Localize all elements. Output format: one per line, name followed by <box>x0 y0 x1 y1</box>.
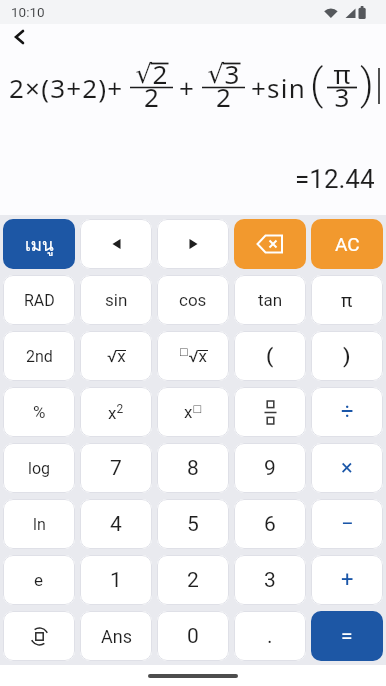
staticText: 2 <box>187 568 199 593</box>
button[interactable] <box>157 219 229 269</box>
button[interactable]: log <box>3 443 75 493</box>
button[interactable] <box>234 387 306 437</box>
button[interactable]: √x <box>80 331 152 381</box>
staticText: 10:10 <box>11 4 45 20</box>
staticText: √x <box>107 346 126 366</box>
staticText: π <box>341 289 353 311</box>
staticText: x□ <box>184 402 202 422</box>
staticText: 9 <box>264 456 276 481</box>
staticText: = <box>341 624 353 649</box>
button[interactable]: sin <box>80 275 152 325</box>
button[interactable]: 7 <box>80 443 152 493</box>
button[interactable]: 4 <box>80 499 152 549</box>
button[interactable]: 3 <box>234 555 306 605</box>
staticText: 0 <box>187 624 199 649</box>
button[interactable]: % <box>3 387 75 437</box>
staticText: AC <box>335 233 360 255</box>
button[interactable]: + <box>311 555 383 605</box>
staticText: 3 <box>264 568 276 593</box>
button[interactable]: 8 <box>157 443 229 493</box>
button[interactable]: 9 <box>234 443 306 493</box>
button[interactable]: = <box>311 611 383 661</box>
staticText: Ans <box>101 626 132 647</box>
button[interactable]: AC <box>311 219 383 269</box>
button[interactable]: ( <box>234 331 306 381</box>
staticText: 8 <box>187 456 199 481</box>
button[interactable]: □√x <box>157 331 229 381</box>
button[interactable]: x□ <box>157 387 229 437</box>
button[interactable]: cos <box>157 275 229 325</box>
staticText: □√x <box>179 346 208 366</box>
staticText: . <box>267 624 273 649</box>
staticText: × <box>341 455 353 481</box>
button[interactable]: ln <box>3 499 75 549</box>
button[interactable]: ÷ <box>311 387 383 437</box>
staticText: cos <box>179 290 207 310</box>
staticText: ln <box>33 515 46 534</box>
button[interactable]: 2nd <box>3 331 75 381</box>
button[interactable]: Ans <box>80 611 152 661</box>
staticText: % <box>33 402 46 422</box>
button[interactable]: . <box>234 611 306 661</box>
button[interactable] <box>234 219 306 269</box>
staticText: + <box>341 567 354 593</box>
button[interactable]: 0 <box>157 611 229 661</box>
button[interactable]: 5 <box>157 499 229 549</box>
button[interactable]: x2 <box>80 387 152 437</box>
button[interactable]: π <box>311 275 383 325</box>
staticText: ÷ <box>341 399 354 425</box>
button[interactable]: ) <box>311 331 383 381</box>
button[interactable]: 6 <box>234 499 306 549</box>
button[interactable]: RAD <box>3 275 75 325</box>
staticText: 5 <box>187 512 199 537</box>
staticText: e <box>34 570 44 590</box>
staticText: log <box>28 459 50 478</box>
staticText: 7 <box>110 456 122 481</box>
button[interactable]: × <box>311 443 383 493</box>
staticText: RAD <box>24 291 55 310</box>
staticText: =12.44 <box>295 164 375 194</box>
button[interactable]: เมนู <box>3 219 75 269</box>
button[interactable]: 1 <box>80 555 152 605</box>
button[interactable] <box>80 219 152 269</box>
button[interactable]: 2 <box>157 555 229 605</box>
staticText: 4 <box>110 512 122 537</box>
button[interactable]: − <box>311 499 383 549</box>
staticText: − <box>341 511 354 537</box>
button[interactable]: e <box>3 555 75 605</box>
staticText: 6 <box>264 512 276 537</box>
staticText: 2nd <box>26 347 53 366</box>
button[interactable] <box>3 611 75 661</box>
staticText: ) <box>343 344 351 369</box>
staticText: x2 <box>108 402 124 423</box>
button[interactable] <box>13 30 27 44</box>
staticText: ( <box>266 344 274 369</box>
staticText: sin <box>105 290 128 310</box>
staticText: tan <box>258 290 283 310</box>
button[interactable]: tan <box>234 275 306 325</box>
staticText: เมนู <box>25 231 54 258</box>
staticText: 1 <box>110 568 122 593</box>
